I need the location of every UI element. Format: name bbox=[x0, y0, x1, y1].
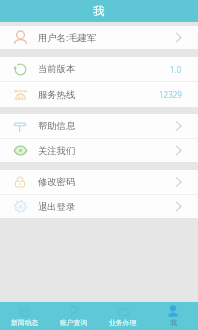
button[interactable]: 帮助信息 bbox=[0, 114, 198, 138]
button[interactable]: 修改密码 bbox=[0, 170, 198, 194]
button[interactable]: 用户名:毛建军 bbox=[0, 26, 198, 49]
button[interactable]: 当前版本 bbox=[0, 57, 198, 81]
button[interactable]: 关注我们 bbox=[0, 139, 198, 162]
staticText: 我 bbox=[170, 318, 177, 327]
staticText: 关注我们 bbox=[38, 145, 76, 157]
staticText: 帮助信息 bbox=[38, 120, 76, 132]
button[interactable]: 新闻动态 bbox=[0, 302, 49, 330]
staticText: 修改密码 bbox=[38, 176, 76, 188]
staticText: 用户名:毛建军 bbox=[38, 31, 97, 44]
button[interactable]: 我 bbox=[148, 302, 198, 330]
button[interactable]: 退出登录 bbox=[0, 195, 198, 218]
button[interactable]: 业务办理 bbox=[98, 302, 148, 330]
staticText: 12329 bbox=[159, 89, 182, 100]
button[interactable]: 账户查询 bbox=[49, 302, 98, 330]
staticText: 服务热线 bbox=[38, 89, 76, 101]
staticText: 1.0 bbox=[170, 64, 182, 75]
staticText: 业务办理 bbox=[109, 318, 137, 327]
staticText: 我 bbox=[93, 4, 105, 18]
staticText: 新闻动态 bbox=[11, 318, 39, 327]
button[interactable]: 服务热线 bbox=[0, 82, 198, 107]
staticText: 退出登录 bbox=[38, 201, 76, 213]
staticText: 账户查询 bbox=[60, 318, 88, 327]
staticText: 当前版本 bbox=[38, 63, 76, 75]
